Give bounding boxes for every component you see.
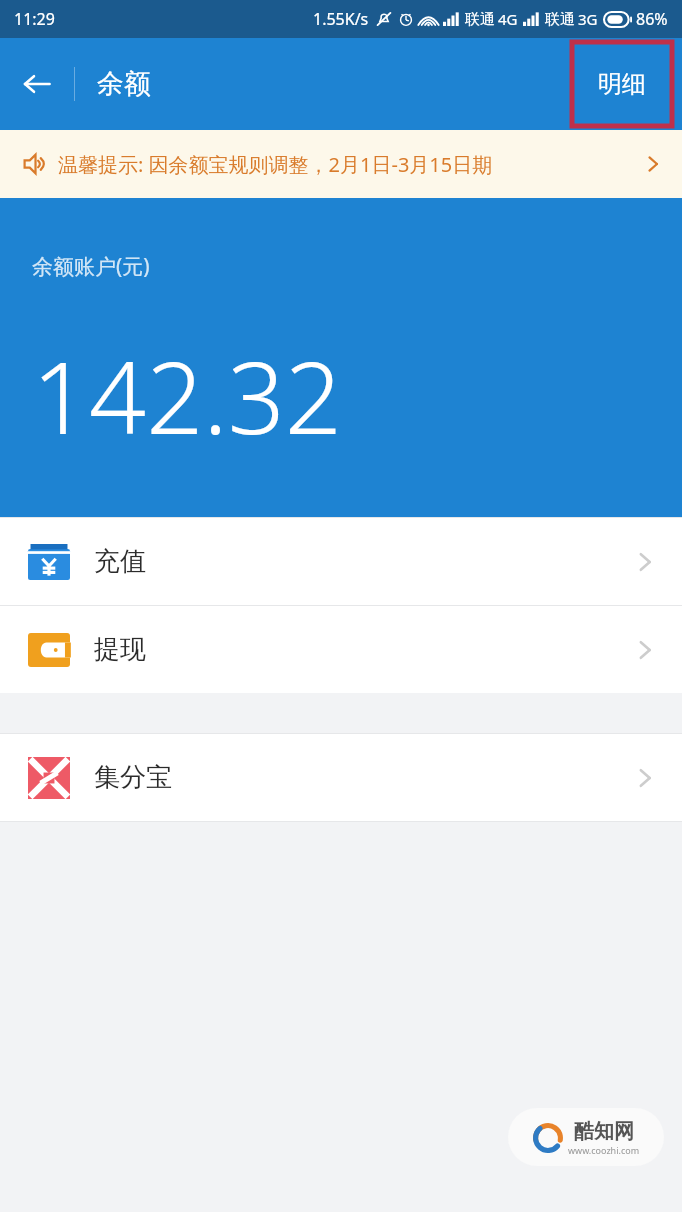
- staticText: 3G: [578, 9, 598, 29]
- staticText: 明细: [598, 69, 646, 99]
- staticText: 集分宝: [94, 761, 172, 794]
- staticText: 1.55K/s: [313, 8, 369, 30]
- button[interactable]: 集分宝: [0, 734, 682, 821]
- staticText: 余额: [97, 67, 151, 101]
- staticText: 提现: [94, 633, 146, 666]
- staticText: 余额账户(元): [32, 252, 150, 281]
- staticText: 酷知网: [574, 1119, 634, 1144]
- button[interactable]: 充值: [0, 518, 682, 605]
- staticText: 142.32: [32, 327, 342, 463]
- button[interactable]: Back: [0, 47, 74, 121]
- button[interactable]: 明细: [572, 42, 672, 126]
- staticText: 联通: [545, 10, 575, 29]
- button[interactable]: 温馨提示: 因余额宝规则调整，2月1日-3月15日期: [0, 130, 682, 198]
- staticText: 4G: [498, 9, 518, 29]
- staticText: 温馨提示: 因余额宝规则调整，2月1日-3月15日期: [58, 151, 636, 178]
- staticText: 联通: [465, 10, 495, 29]
- staticText: www.coozhi.com: [568, 1144, 640, 1156]
- staticText: 86%: [636, 8, 668, 30]
- staticText: 充值: [94, 545, 146, 578]
- staticText: 11:29: [14, 8, 55, 30]
- button[interactable]: 提现: [0, 606, 682, 693]
